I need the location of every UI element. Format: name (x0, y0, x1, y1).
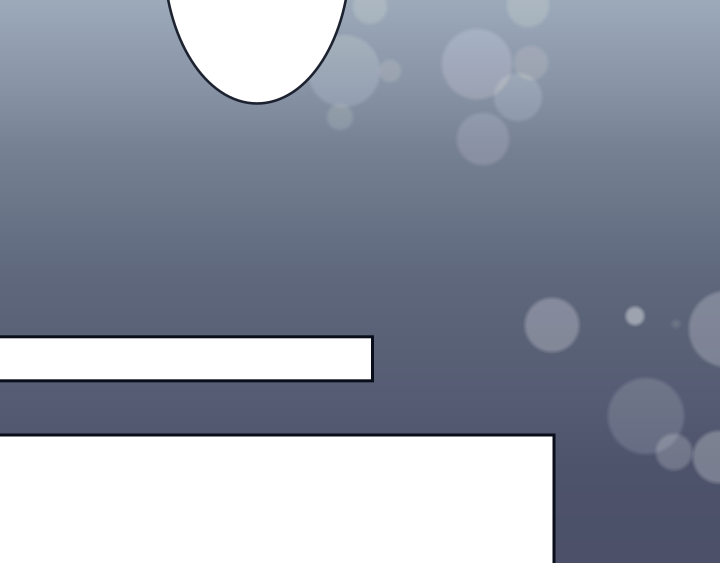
button[interactable]: Card (0, 435, 554, 563)
button[interactable]: Profile (164, 0, 350, 103)
button[interactable]: Row (0, 337, 372, 381)
